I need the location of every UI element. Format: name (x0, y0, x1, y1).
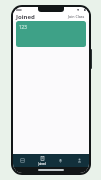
button[interactable]: Join Class (67, 13, 86, 20)
staticText: Joined (16, 13, 35, 21)
staticText: Joined (38, 162, 46, 166)
button[interactable]: Notifications (51, 154, 70, 167)
button[interactable]: Home (13, 154, 32, 167)
button[interactable]: Profile (70, 154, 89, 167)
staticText: Join Class (68, 14, 85, 19)
button[interactable]: Joined (32, 154, 51, 167)
staticText: 123 (19, 24, 27, 30)
button[interactable]: 123 (16, 21, 86, 47)
